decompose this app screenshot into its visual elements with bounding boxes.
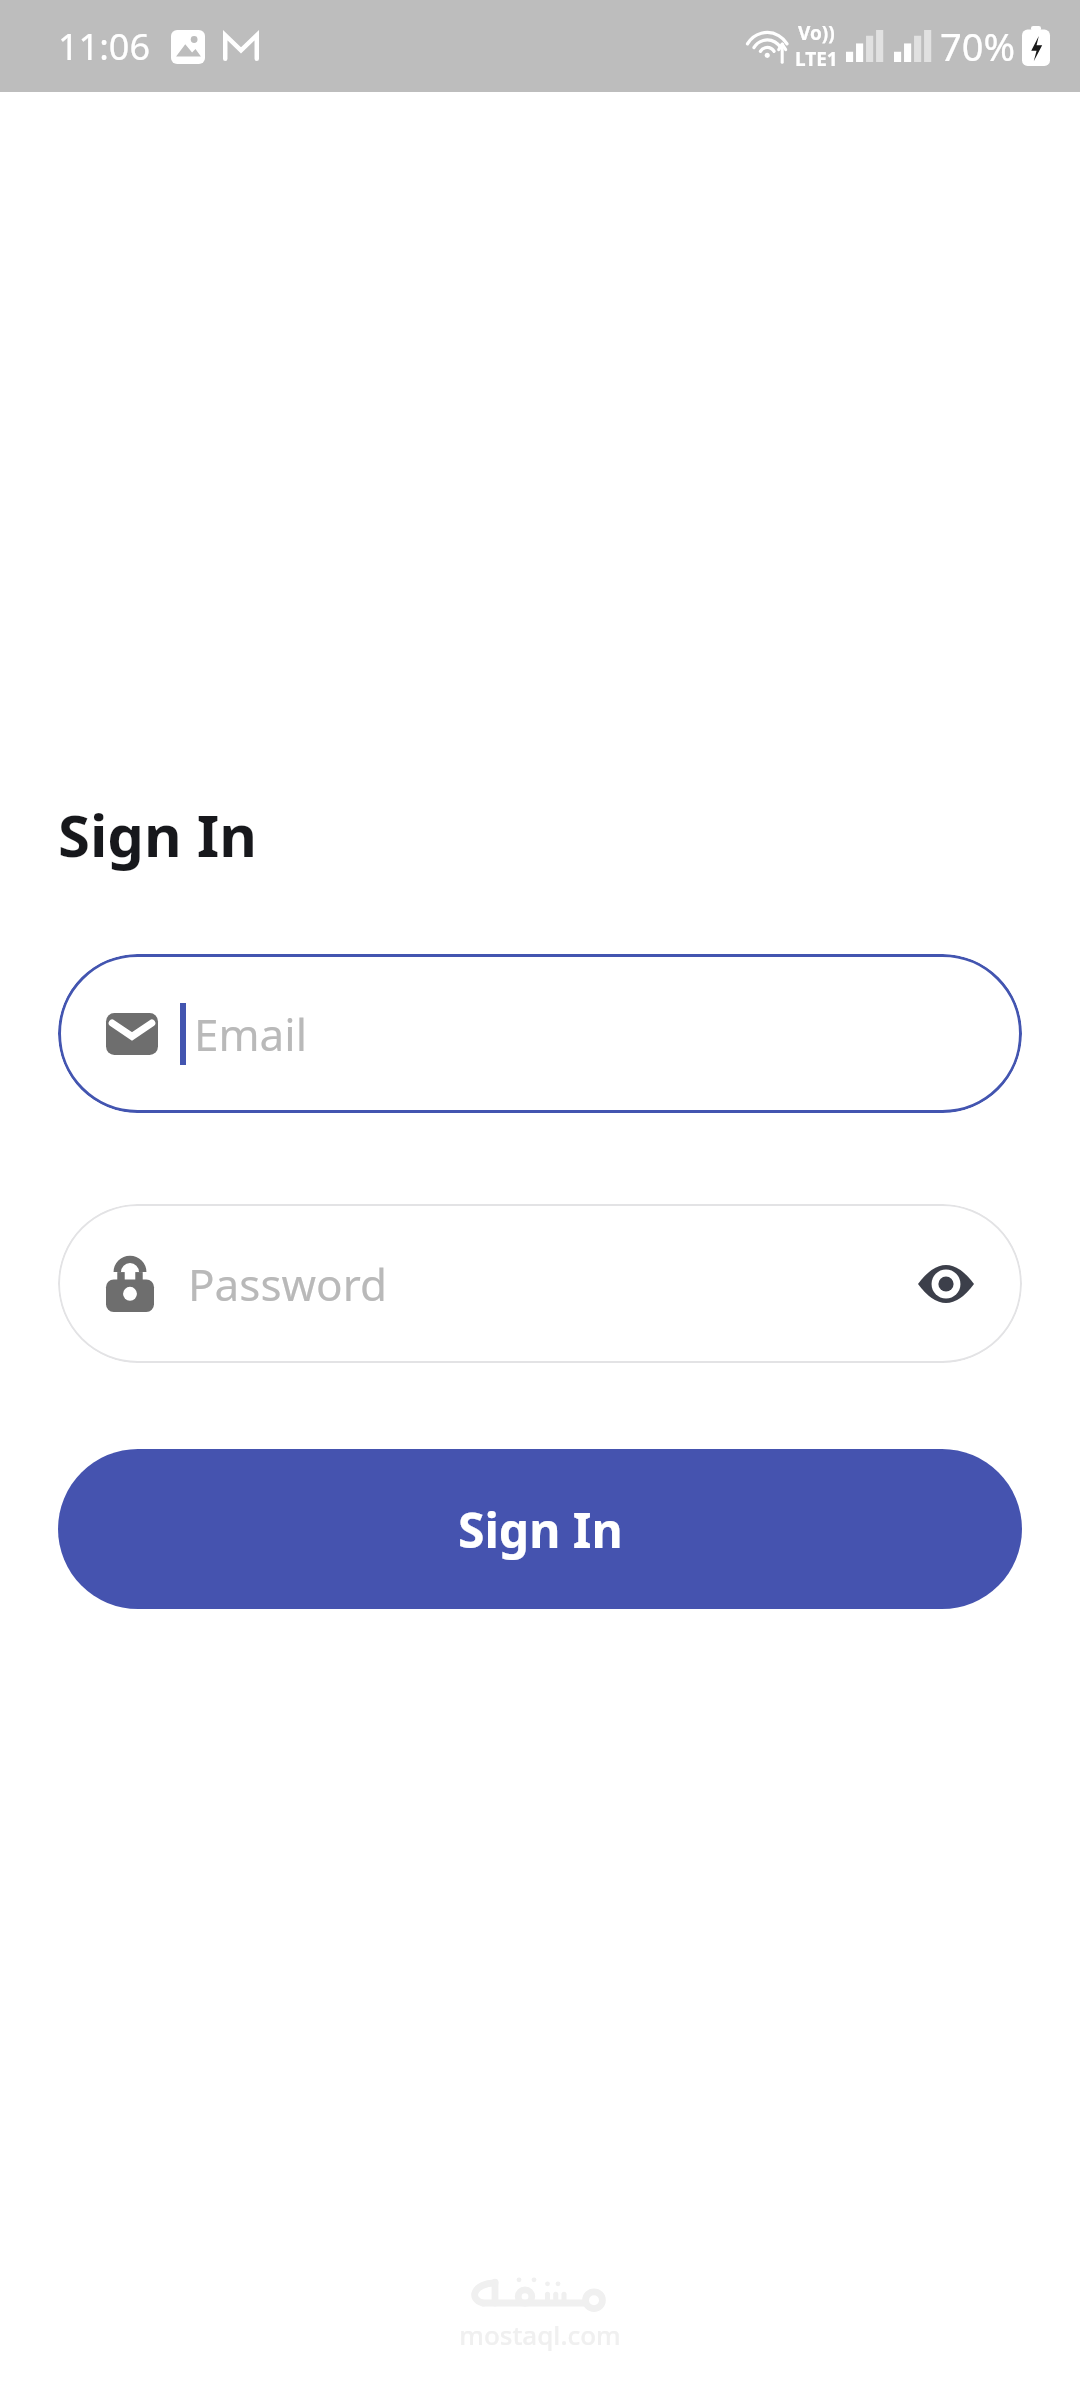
staticText: 70%: [940, 20, 1016, 72]
staticText: Sign In: [458, 1497, 623, 1562]
button[interactable]: Password: [58, 1204, 1022, 1363]
button[interactable]: Email: [58, 954, 1022, 1113]
staticText: mostaql.com: [459, 2317, 621, 2352]
button[interactable]: Show password: [914, 1252, 978, 1316]
staticText: LTE1: [795, 46, 838, 72]
button[interactable]: Sign In: [58, 1449, 1022, 1609]
staticText: Email: [194, 1004, 307, 1064]
staticText: Password: [188, 1254, 388, 1314]
staticText: 11:06: [58, 22, 151, 71]
staticText: Sign In: [58, 795, 257, 874]
staticText: Vo)): [798, 20, 835, 46]
